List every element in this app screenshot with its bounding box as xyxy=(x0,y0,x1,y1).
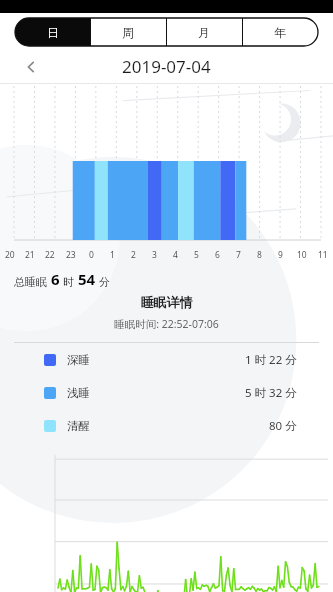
button[interactable]: 年 xyxy=(242,18,318,46)
staticText: 周 xyxy=(122,25,134,40)
staticText: 月 xyxy=(198,25,210,40)
staticText: 2 xyxy=(131,249,136,261)
button[interactable]: 清醒 xyxy=(0,409,333,442)
staticText: 7 xyxy=(236,249,241,261)
staticText: 5 xyxy=(194,249,199,261)
staticText: 日 xyxy=(47,25,59,40)
staticText: 睡眠详情 xyxy=(0,294,333,310)
staticText: 11 xyxy=(318,249,328,261)
staticText: 20 xyxy=(5,249,15,261)
button[interactable]: 月 xyxy=(166,18,242,46)
staticText: 21 xyxy=(25,249,35,261)
staticText: 3 xyxy=(152,249,157,261)
staticText: 总睡眠 xyxy=(14,275,47,289)
staticText: 10 xyxy=(297,249,307,261)
staticText: 浅睡 xyxy=(67,386,90,400)
staticText: 22 xyxy=(45,249,55,261)
staticText: 时 xyxy=(63,275,74,289)
button[interactable]: 日 xyxy=(15,18,90,46)
staticText: 1 xyxy=(110,249,115,261)
staticText: 深睡 xyxy=(67,353,90,367)
staticText: 睡眠时间: 22:52-07:06 xyxy=(0,317,333,331)
staticText: 4 xyxy=(173,249,178,261)
staticText: 1 时 22 分 xyxy=(245,352,297,368)
staticText: 分 xyxy=(99,275,110,289)
staticText: 9 xyxy=(278,249,283,261)
staticText: 6 xyxy=(51,269,60,289)
staticText: 8 xyxy=(257,249,262,261)
button[interactable]: 浅睡 xyxy=(0,376,333,409)
staticText: 0 xyxy=(89,249,94,261)
button[interactable]: 深睡 xyxy=(0,343,333,376)
staticText: 80 分 xyxy=(269,418,297,434)
button[interactable]: 周 xyxy=(90,18,166,46)
staticText: 23 xyxy=(66,249,76,261)
staticText: 2019-07-04 xyxy=(122,55,211,78)
staticText: 54 xyxy=(78,269,96,289)
staticText: 6 xyxy=(215,249,220,261)
staticText: 年 xyxy=(274,25,286,40)
staticText: 清醒 xyxy=(67,419,90,433)
staticText: 5 时 32 分 xyxy=(245,385,297,401)
button[interactable]: Previous day xyxy=(18,54,44,80)
